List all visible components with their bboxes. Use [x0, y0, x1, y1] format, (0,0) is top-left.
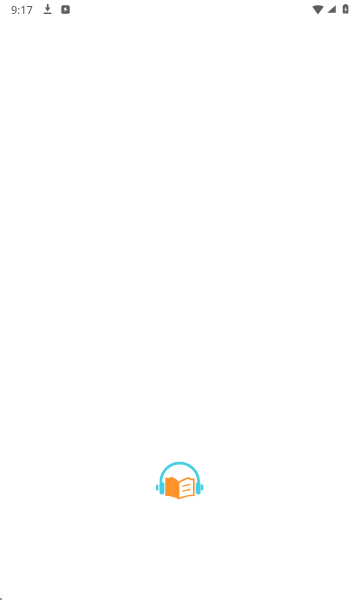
other: Download [43, 3, 52, 15]
other: App logo [156, 461, 204, 501]
other: Wi-Fi [312, 5, 324, 14]
other: Battery [342, 4, 349, 14]
other: Signal [327, 5, 336, 13]
other: Notification [61, 5, 70, 14]
staticText: 9:17 [11, 2, 33, 17]
